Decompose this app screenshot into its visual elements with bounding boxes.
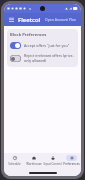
button[interactable]: Warehouse <box>24 153 43 170</box>
staticText: Preferences <box>63 162 80 166</box>
staticText: Reject irrelevant offers (price-only all… <box>24 53 75 63</box>
button[interactable]: Open Account Plan <box>44 16 77 23</box>
staticText: Schedule <box>8 162 21 166</box>
button[interactable]: Reject irrelevant offers (price-only all… <box>10 52 75 64</box>
staticText: Fleetcol <box>18 16 41 24</box>
button[interactable]: Input Control <box>43 153 62 170</box>
staticText: Open Account Plan <box>45 17 76 22</box>
staticText: Block Preferences <box>10 32 47 38</box>
button[interactable]: Preferences <box>62 153 81 170</box>
button[interactable]: Open navigation menu <box>8 16 15 23</box>
staticText: Input Control <box>43 162 62 166</box>
button[interactable]: Schedule <box>4 153 24 170</box>
staticText: Warehouse <box>26 162 42 166</box>
button[interactable]: Accept offers "just for you" <box>10 41 75 50</box>
staticText: Accept offers "just for you" <box>24 43 70 48</box>
